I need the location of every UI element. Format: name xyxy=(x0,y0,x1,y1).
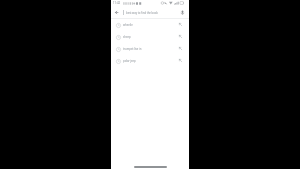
button[interactable]: Back xyxy=(111,7,189,18)
button[interactable]: Insert query xyxy=(176,56,185,65)
staticText: trumpet live in xyxy=(123,47,176,51)
button[interactable]: Insert query xyxy=(176,44,185,53)
staticText: polar jeep xyxy=(123,59,176,63)
button[interactable]: polar jeep xyxy=(111,55,189,67)
staticText: 11:42 xyxy=(113,1,121,5)
staticText: wheelie xyxy=(123,23,176,27)
button[interactable]: Back xyxy=(113,9,120,16)
staticText: sheep xyxy=(123,35,176,39)
button[interactable]: sheep xyxy=(111,31,189,43)
button[interactable]: trumpet live in xyxy=(111,43,189,55)
staticText: best way to find the book xyxy=(126,11,178,15)
button[interactable]: wheelie xyxy=(111,19,189,31)
button[interactable]: Insert query xyxy=(176,32,185,41)
button[interactable]: Insert query xyxy=(176,20,185,29)
button[interactable]: Voice search xyxy=(178,8,187,17)
